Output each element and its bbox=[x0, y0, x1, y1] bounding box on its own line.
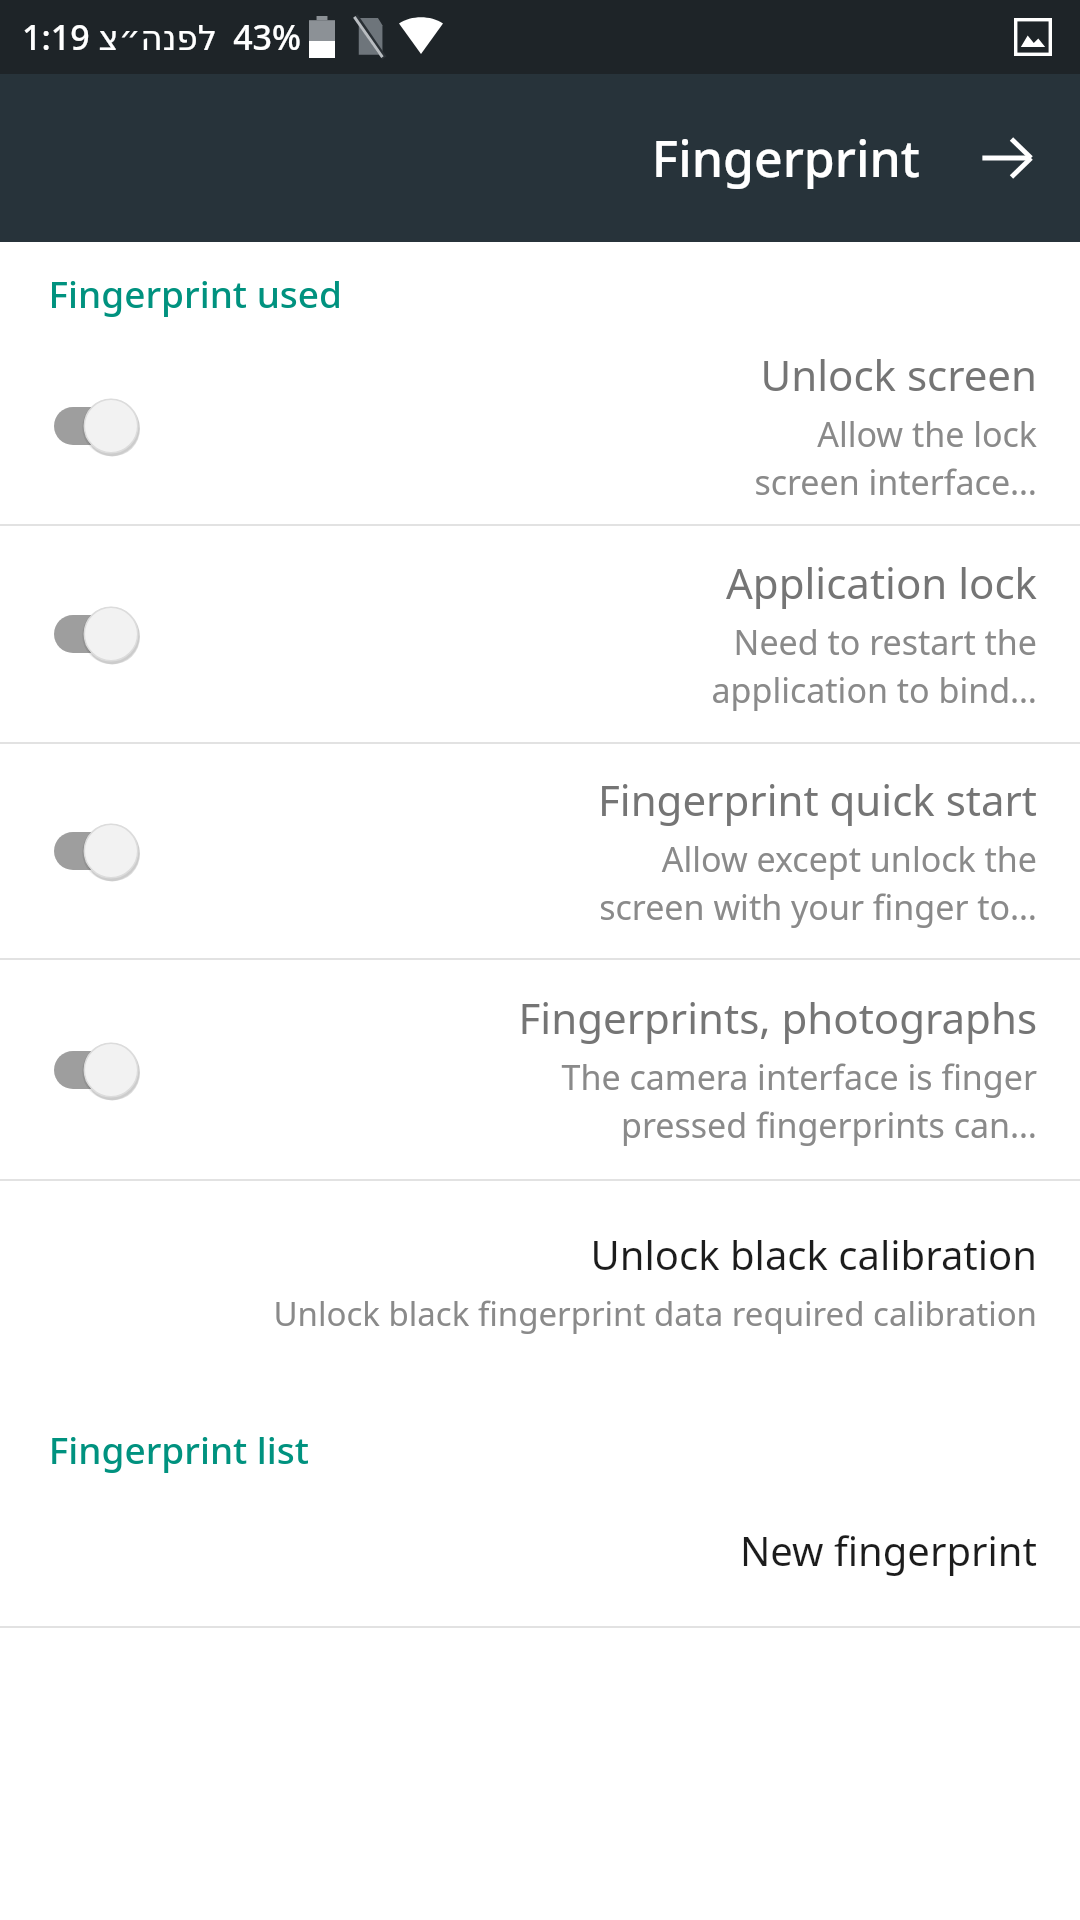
staticText: Unlock black fingerprint data required c… bbox=[273, 1291, 1037, 1336]
other: Screenshot bbox=[1014, 18, 1052, 56]
staticText: Fingerprint quick start bbox=[598, 771, 1037, 828]
button[interactable]: Toggle bbox=[0, 526, 1080, 742]
button[interactable]: Toggle bbox=[50, 1038, 146, 1102]
staticText: לפנה״צ 1:19 bbox=[22, 14, 217, 60]
staticText: Unlock black calibration bbox=[590, 1227, 1037, 1281]
staticText: screen with your finger to… bbox=[599, 884, 1037, 930]
staticText: Fingerprint bbox=[651, 124, 920, 192]
button[interactable]: Toggle bbox=[0, 744, 1080, 958]
staticText: Fingerprint list bbox=[48, 1424, 309, 1474]
button[interactable]: Toggle bbox=[0, 960, 1080, 1179]
staticText: screen interface… bbox=[754, 459, 1037, 505]
staticText: pressed fingerprints can… bbox=[621, 1102, 1037, 1148]
button[interactable]: Back bbox=[964, 115, 1050, 201]
staticText: Unlock screen bbox=[760, 346, 1037, 403]
button[interactable]: Toggle bbox=[50, 819, 146, 883]
staticText: application to bind… bbox=[711, 667, 1037, 713]
staticText: 43% bbox=[233, 14, 301, 60]
staticText: Fingerprints, photographs bbox=[518, 989, 1037, 1046]
staticText: The camera interface is finger bbox=[561, 1054, 1037, 1100]
staticText: Allow except unlock the bbox=[661, 836, 1037, 882]
staticText: Application lock bbox=[725, 554, 1037, 611]
staticText: Fingerprint used bbox=[48, 268, 342, 318]
button[interactable]: Toggle bbox=[0, 328, 1080, 524]
button[interactable]: Toggle bbox=[50, 602, 146, 666]
button[interactable]: Unlock black calibration bbox=[0, 1181, 1080, 1380]
button[interactable]: New fingerprint bbox=[0, 1474, 1080, 1626]
staticText: Allow the lock bbox=[817, 411, 1037, 457]
staticText: Need to restart the bbox=[733, 619, 1037, 665]
button[interactable]: Toggle bbox=[50, 394, 146, 458]
staticText: New fingerprint bbox=[739, 1523, 1037, 1577]
